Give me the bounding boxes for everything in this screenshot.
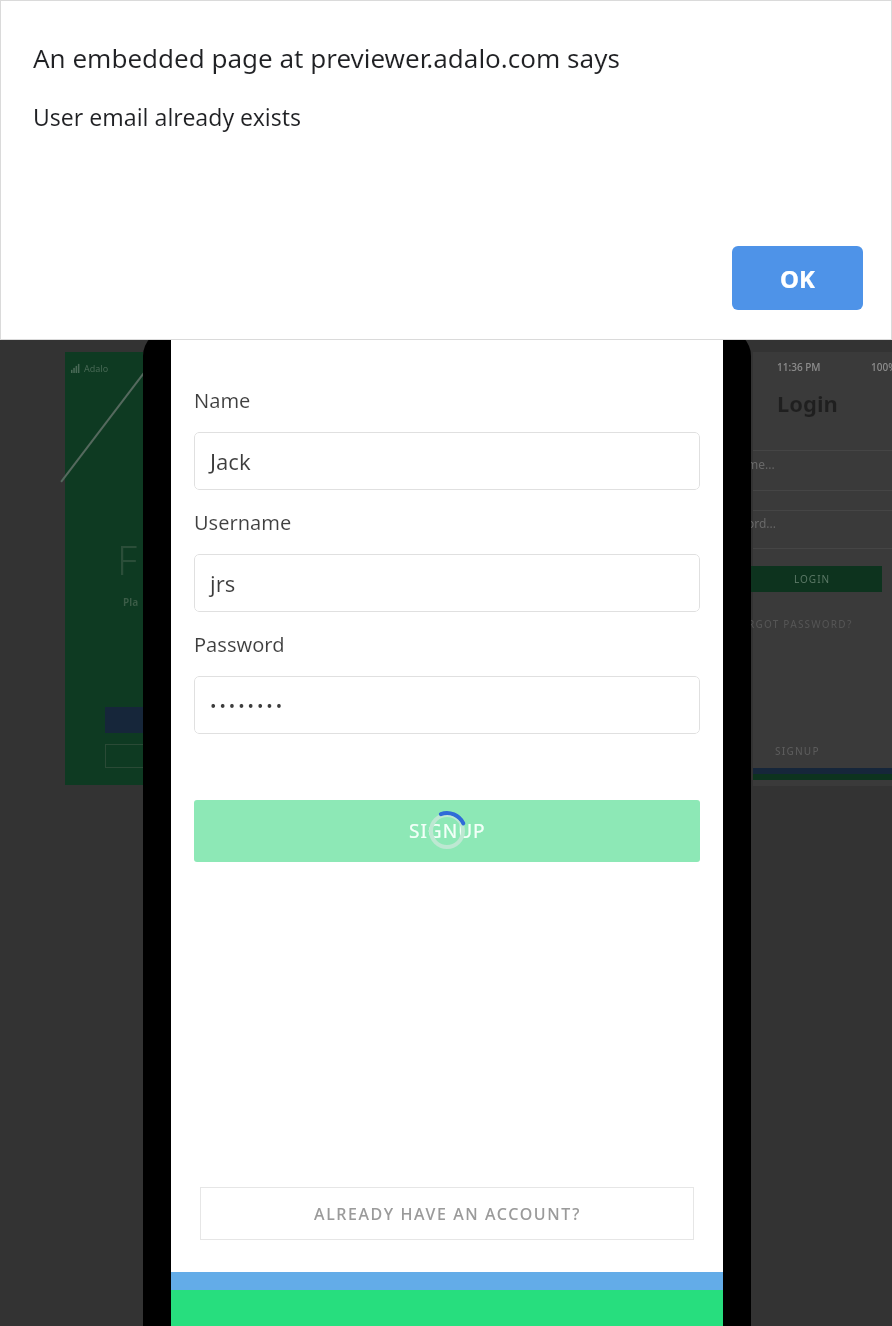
staticText: 100% — [871, 360, 892, 374]
staticText: Name — [194, 387, 251, 414]
button[interactable]: Jack — [194, 432, 700, 490]
staticText: An embedded page at previewer.adalo.com … — [33, 40, 620, 75]
staticText: 11:36 PM — [777, 360, 821, 374]
staticText: User email already exists — [33, 101, 302, 132]
button[interactable]: jrs — [194, 554, 700, 612]
button[interactable]: OK — [732, 246, 863, 310]
staticText: LOGIN — [794, 572, 831, 586]
button[interactable]: SIGNUP — [194, 800, 700, 862]
staticText: F — [117, 532, 138, 586]
staticText: SIGNUP — [409, 818, 486, 844]
staticText: Adalo — [84, 362, 109, 374]
staticText: Login — [777, 388, 838, 418]
staticText: Pla — [123, 595, 139, 609]
staticText: jrs — [210, 568, 236, 598]
staticText: •••••••• — [210, 694, 286, 717]
staticText: OK — [780, 262, 815, 295]
staticText: RGOT PASSWORD? — [748, 617, 853, 631]
staticText: Jack — [210, 446, 251, 476]
staticText: Password — [194, 631, 285, 658]
button[interactable]: •••••••• — [194, 676, 700, 734]
staticText: me... — [747, 456, 775, 472]
staticText: Username — [194, 509, 292, 536]
staticText: ALREADY HAVE AN ACCOUNT? — [314, 1203, 581, 1225]
button[interactable]: ALREADY HAVE AN ACCOUNT? — [200, 1187, 694, 1240]
staticText: ord... — [747, 515, 777, 531]
staticText: SIGNUP — [775, 744, 820, 758]
